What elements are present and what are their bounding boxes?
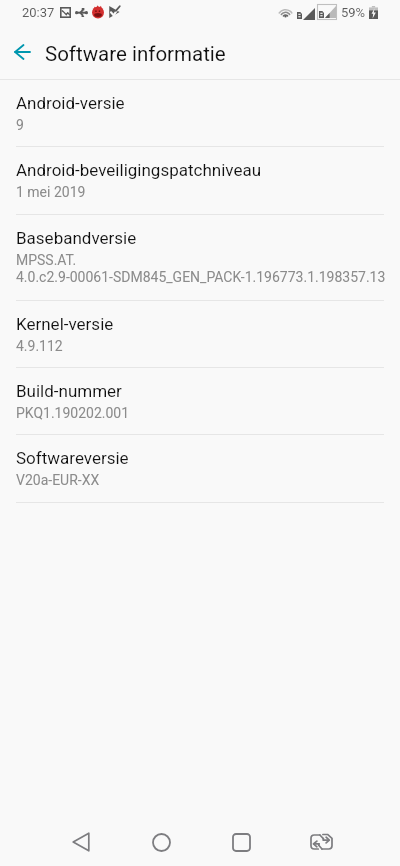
button[interactable]: Home (121, 818, 201, 866)
button[interactable]: Softwareversie (0, 435, 400, 503)
button[interactable]: Build-nummer (0, 368, 400, 435)
staticText: 4.0.c2.9-00061-SDM845_GEN_PACK-1.196773.… (16, 269, 386, 285)
staticText: V20a-EUR-XX (16, 472, 100, 488)
button[interactable]: Multi window (281, 818, 361, 866)
staticText: Software informatie (45, 42, 226, 66)
staticText: Android-beveiligingspatchniveau (16, 160, 262, 180)
staticText: Softwareversie (16, 448, 129, 468)
staticText: MPSS.AT. (16, 252, 77, 268)
staticText: PKQ1.190202.001 (16, 405, 130, 421)
staticText: 9 (16, 117, 24, 133)
button[interactable]: Android-beveiligingspatchniveau (0, 147, 400, 215)
button[interactable]: Android-versie (0, 80, 400, 147)
staticText: Basebandversie (16, 228, 137, 248)
staticText: Build-nummer (16, 381, 122, 401)
staticText: 1 mei 2019 (16, 184, 86, 200)
button[interactable]: Kernel-versie (0, 301, 400, 368)
staticText: 59% (341, 5, 366, 20)
button[interactable]: Back (41, 818, 121, 866)
staticText: Kernel-versie (16, 314, 114, 334)
staticText: 20:37 (22, 5, 55, 20)
staticText: 4.9.112 (16, 338, 63, 354)
staticText: Android-versie (16, 93, 125, 113)
button[interactable]: Recent apps (201, 818, 281, 866)
button[interactable]: Basebandversie (0, 215, 400, 301)
button[interactable]: Back (0, 30, 48, 78)
